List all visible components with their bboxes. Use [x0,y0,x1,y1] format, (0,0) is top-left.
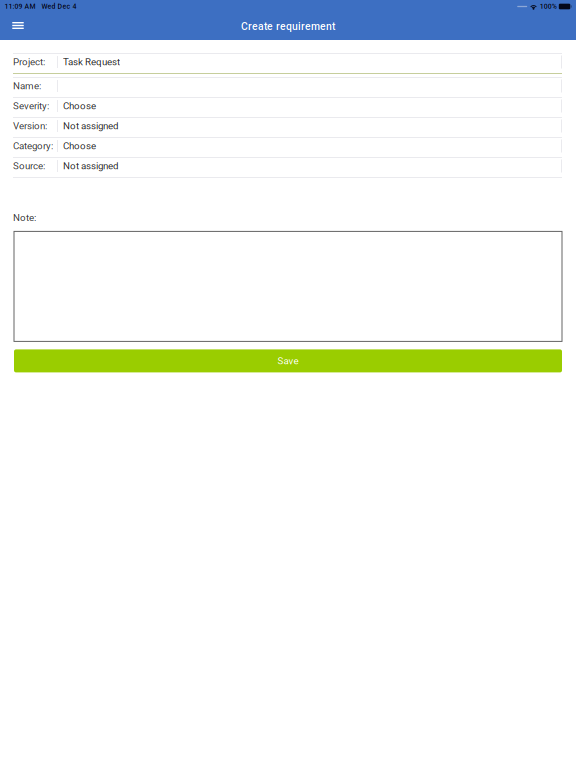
button[interactable]: Menu [6,13,30,40]
staticText: Severity: [13,100,49,112]
staticText: Project: [13,56,45,68]
button[interactable]: Project: [0,54,576,73]
staticText: Name: [13,80,41,92]
staticText: Save [277,355,298,367]
staticText: 11:09 AM [4,2,35,10]
staticText: Not assigned [63,160,118,172]
staticText: 100% [540,2,557,10]
button[interactable]: Source: [0,158,576,177]
button[interactable]: Save [0,349,576,372]
staticText: Source: [13,160,45,172]
staticText: Version: [13,120,47,132]
button[interactable]: Category: [0,138,576,157]
staticText: Task Request [63,56,120,68]
button[interactable]: Name: [0,78,576,97]
staticText: Choose [63,100,96,112]
button[interactable]: Version: [0,118,576,137]
staticText: Choose [63,140,96,152]
staticText: Category: [13,140,53,152]
staticText: Create requirement [241,20,335,33]
staticText: Wed Dec 4 [41,2,76,10]
button[interactable]: Severity: [0,98,576,117]
staticText: Note: [13,212,36,223]
staticText: Not assigned [63,120,118,132]
